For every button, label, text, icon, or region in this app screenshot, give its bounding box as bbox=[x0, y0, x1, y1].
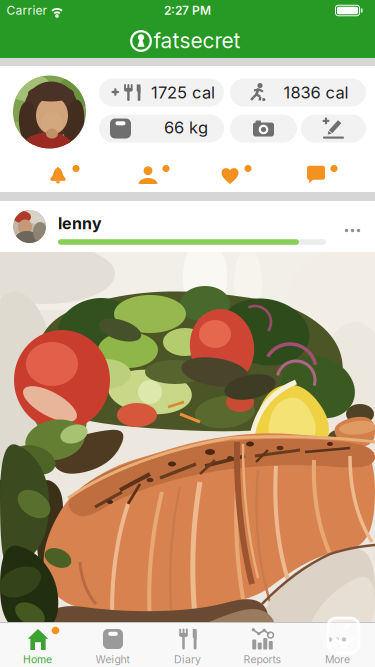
staticText: Weight bbox=[95, 653, 129, 666]
staticText: Diary bbox=[174, 653, 201, 666]
staticText: More bbox=[325, 653, 350, 666]
button[interactable]: Profile photo bbox=[13, 75, 86, 148]
button[interactable]: More options bbox=[338, 220, 368, 241]
button[interactable]: Home bbox=[0, 622, 75, 667]
button[interactable]: Favorites bbox=[219, 163, 257, 188]
button[interactable]: 1725 cal bbox=[99, 78, 224, 106]
staticText: Reports bbox=[243, 653, 281, 666]
button[interactable]: Log food bbox=[301, 114, 366, 142]
staticText: lenny bbox=[58, 214, 102, 233]
staticText: 1725 cal bbox=[151, 82, 215, 102]
staticText: fatsecret bbox=[153, 28, 240, 53]
button[interactable]: Weight bbox=[75, 622, 150, 667]
staticText: 2:27 PM bbox=[164, 3, 211, 18]
button[interactable]: 66 kg bbox=[99, 114, 224, 142]
staticText: Home bbox=[23, 653, 52, 666]
button[interactable]: More bbox=[300, 622, 375, 667]
button[interactable]: Take photo bbox=[230, 114, 297, 142]
staticText: Carrier bbox=[6, 3, 47, 18]
button[interactable]: Friends bbox=[137, 163, 175, 188]
button[interactable]: Diary bbox=[150, 622, 225, 667]
button[interactable]: Reports bbox=[225, 622, 300, 667]
button[interactable]: 1836 cal bbox=[230, 78, 366, 106]
button[interactable]: Notifications bbox=[47, 163, 85, 188]
staticText: 1836 cal bbox=[283, 82, 348, 102]
button[interactable]: Messages bbox=[305, 163, 343, 188]
button[interactable]: lenny bbox=[0, 202, 338, 252]
staticText: 66 kg bbox=[164, 117, 208, 137]
